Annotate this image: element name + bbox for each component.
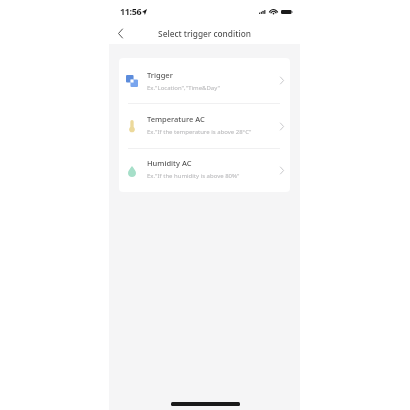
staticText: Temperature AC <box>147 114 205 124</box>
staticText: Ex."If the humidity is above 80%" <box>147 172 240 180</box>
staticText: Select trigger condition <box>109 28 300 39</box>
staticText: Humidity AC <box>147 158 192 168</box>
button[interactable]: Humidity AC <box>119 149 290 192</box>
staticText: 11:56 <box>120 5 142 17</box>
staticText: Trigger <box>147 70 173 80</box>
staticText: Ex."Location","Time&Day" <box>147 84 220 92</box>
button[interactable]: Back <box>109 22 131 44</box>
button[interactable]: Temperature AC <box>119 104 290 148</box>
button[interactable]: Trigger <box>119 58 290 103</box>
staticText: Ex."If the temperature is above 28°C" <box>147 128 252 136</box>
